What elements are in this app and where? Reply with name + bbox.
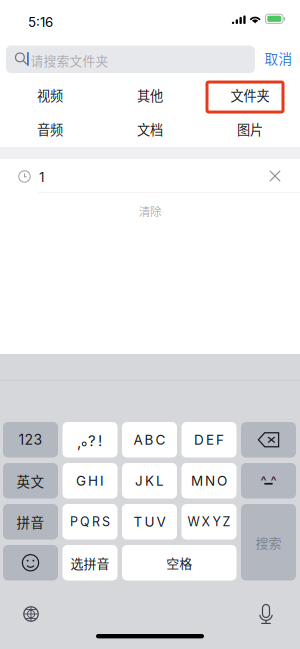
staticText: 搜索 xyxy=(255,533,281,552)
button[interactable]: Emoji xyxy=(3,545,58,580)
staticText: 音频 xyxy=(37,119,63,138)
staticText: 清除 xyxy=(139,203,161,219)
button[interactable]: G H I xyxy=(62,463,117,498)
staticText: 5:16 xyxy=(28,14,53,30)
button[interactable]: 取消 xyxy=(258,43,298,73)
button[interactable]: D E F xyxy=(181,422,236,457)
button[interactable]: Dictation xyxy=(260,604,272,625)
button[interactable]: 123 xyxy=(3,422,58,457)
button[interactable]: 1 xyxy=(0,159,300,192)
staticText: 图片 xyxy=(237,119,263,138)
staticText: M N O xyxy=(191,473,227,489)
button[interactable]: 清除 xyxy=(0,193,300,229)
staticText: , xyxy=(77,433,81,451)
staticText: J K L xyxy=(135,473,164,489)
button[interactable]: P Q R S xyxy=(62,504,117,539)
button[interactable]: 其他 xyxy=(100,78,200,112)
staticText: 选拼音 xyxy=(70,553,109,572)
staticText: 视频 xyxy=(37,85,63,104)
staticText: 文件夹 xyxy=(230,85,269,104)
staticText: 请搜索文件夹 xyxy=(30,51,108,69)
button[interactable]: W X Y Z xyxy=(181,504,236,539)
button[interactable]: J K L xyxy=(122,463,177,498)
button[interactable]: 搜索 xyxy=(241,504,296,580)
staticText: A B C xyxy=(133,432,165,448)
button[interactable]: T U V xyxy=(122,504,177,539)
button[interactable]: 文件夹 xyxy=(200,78,300,112)
button[interactable]: 选拼音 xyxy=(62,545,117,580)
staticText: 文档 xyxy=(137,119,163,138)
button[interactable]: 视频 xyxy=(0,78,100,112)
staticText: 拼音 xyxy=(16,512,44,531)
staticText: 空格 xyxy=(166,553,192,572)
button[interactable]: 英文 xyxy=(3,463,58,498)
staticText: ^ ^ xyxy=(260,473,276,489)
button[interactable]: 空格 xyxy=(122,545,236,580)
button[interactable]: 拼音 xyxy=(3,504,58,539)
staticText: 123 xyxy=(18,431,42,448)
button[interactable]: ,。?! xyxy=(62,422,117,457)
button[interactable]: 图片 xyxy=(200,112,300,146)
staticText: T U V xyxy=(133,514,165,530)
staticText: G H I xyxy=(76,473,104,489)
staticText: 1 xyxy=(39,169,44,185)
staticText: P Q R S xyxy=(70,514,110,529)
staticText: 其他 xyxy=(137,85,163,104)
staticText: ? xyxy=(88,432,96,450)
button[interactable]: Emoticons xyxy=(241,463,296,498)
staticText: 英文 xyxy=(16,471,44,490)
staticText: ! xyxy=(98,432,102,450)
button[interactable]: A B C xyxy=(122,422,177,457)
button[interactable]: M N O xyxy=(181,463,236,498)
staticText: W X Y Z xyxy=(187,514,230,529)
button[interactable]: Delete xyxy=(241,422,296,457)
button[interactable]: 音频 xyxy=(0,112,100,146)
button[interactable]: Next keyboard xyxy=(23,606,39,622)
staticText: D E F xyxy=(194,432,224,448)
staticText: 取消 xyxy=(264,48,292,68)
button[interactable]: 文档 xyxy=(100,112,200,146)
